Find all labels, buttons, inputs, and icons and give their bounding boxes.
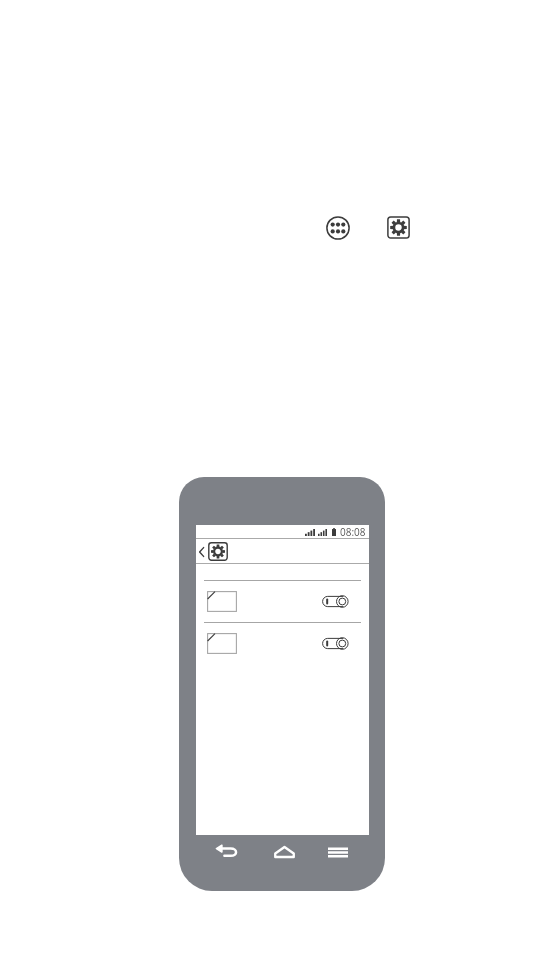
button[interactable]: Home <box>264 835 305 869</box>
button[interactable] <box>207 623 349 664</box>
button[interactable]: Settings <box>387 216 410 239</box>
button[interactable]: Back <box>206 834 247 868</box>
button[interactable]: Settings <box>208 542 228 561</box>
button[interactable]: Back <box>196 543 206 561</box>
button[interactable] <box>207 581 349 622</box>
button[interactable]: All apps <box>326 216 350 240</box>
button[interactable]: Menu <box>318 836 358 869</box>
staticText: 08:08 <box>340 525 366 539</box>
